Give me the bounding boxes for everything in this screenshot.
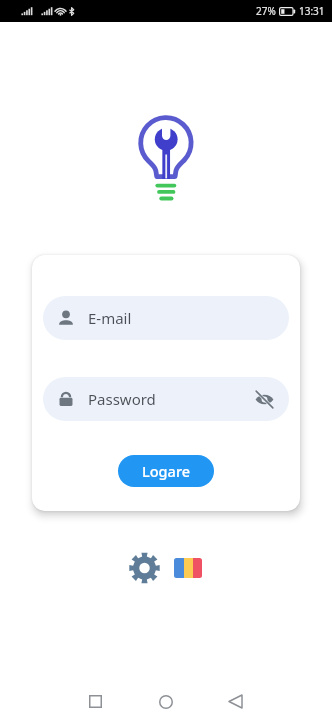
button[interactable]: Recent apps <box>72 678 119 720</box>
button[interactable]: Back <box>212 678 259 720</box>
staticText: 27% <box>256 4 276 18</box>
button[interactable]: Home <box>142 678 189 720</box>
button[interactable]: E-mail <box>43 296 289 340</box>
button[interactable]: Logare <box>118 455 214 487</box>
button[interactable]: Change language <box>169 549 207 587</box>
button[interactable]: Settings <box>125 549 163 587</box>
staticText: E-mail <box>88 308 132 328</box>
staticText: Password <box>88 389 156 409</box>
button[interactable]: Password <box>43 377 289 421</box>
staticText: Logare <box>142 461 191 481</box>
staticText: 13:31 <box>299 4 325 18</box>
